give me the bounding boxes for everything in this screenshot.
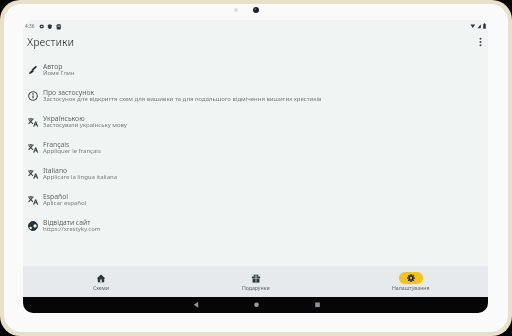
- staticText: Відвідати сайт: [43, 218, 91, 227]
- button[interactable]: [470, 33, 488, 51]
- button[interactable]: Схеми: [23, 266, 178, 297]
- staticText: https://xrestyky.com: [43, 225, 101, 233]
- staticText: Подарунки: [242, 284, 270, 291]
- staticText: Español: [43, 192, 69, 201]
- staticText: Про застосунок: [43, 88, 95, 97]
- staticText: Applicare la lingua italiana: [43, 173, 118, 181]
- staticText: Застосувати українську мову: [43, 121, 127, 129]
- button[interactable]: Автор: [23, 57, 488, 83]
- staticText: Схеми: [93, 284, 109, 291]
- staticText: Italiano: [43, 166, 68, 175]
- button[interactable]: Українською: [23, 109, 488, 135]
- staticText: Йоме Глин: [43, 69, 75, 77]
- button[interactable]: Про застосунок: [23, 83, 488, 109]
- staticText: Хрестики: [27, 35, 75, 49]
- button[interactable]: Italiano: [23, 161, 488, 187]
- staticText: 4:36: [25, 23, 35, 30]
- button[interactable]: Налаштування: [333, 266, 488, 297]
- staticText: Appliquer le français: [43, 147, 101, 155]
- staticText: Français: [43, 140, 70, 149]
- button[interactable]: Français: [23, 135, 488, 161]
- staticText: Aplicar español: [43, 199, 87, 207]
- staticText: Налаштування: [392, 284, 430, 291]
- staticText: Автор: [43, 62, 63, 71]
- staticText: Застосунок для відкриття схем для вишивк…: [43, 95, 322, 103]
- button[interactable]: Відвідати сайт: [23, 213, 488, 239]
- button[interactable]: Подарунки: [178, 266, 333, 297]
- staticText: Українською: [43, 114, 85, 123]
- button[interactable]: Español: [23, 187, 488, 213]
